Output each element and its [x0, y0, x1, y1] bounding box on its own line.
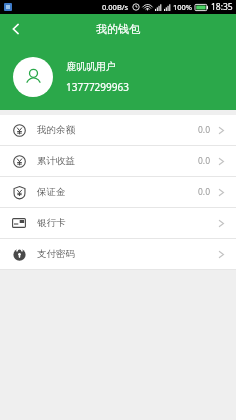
- button[interactable]: 保证金: [0, 177, 236, 207]
- button[interactable]: Back: [0, 14, 32, 44]
- staticText: 0.0: [198, 186, 211, 198]
- button[interactable]: 我的余额: [0, 115, 236, 145]
- staticText: 0.0: [198, 155, 211, 167]
- staticText: 支付密码: [37, 248, 75, 260]
- button[interactable]: 累计收益: [0, 146, 236, 176]
- staticText: 保证金: [37, 186, 66, 198]
- button[interactable]: 银行卡: [0, 208, 236, 238]
- staticText: 鹿叽叽用户: [66, 60, 116, 73]
- button[interactable]: 支付密码: [0, 239, 236, 269]
- staticText: 13777299963: [66, 80, 129, 94]
- staticText: 我的余额: [37, 124, 75, 136]
- staticText: 18:35: [211, 1, 233, 13]
- staticText: 我的钱包: [96, 22, 140, 36]
- staticText: 0.0: [198, 124, 211, 136]
- staticText: 累计收益: [37, 155, 75, 167]
- staticText: 0.00B/s: [102, 2, 129, 12]
- staticText: 100%: [173, 2, 193, 12]
- staticText: 银行卡: [37, 217, 66, 229]
